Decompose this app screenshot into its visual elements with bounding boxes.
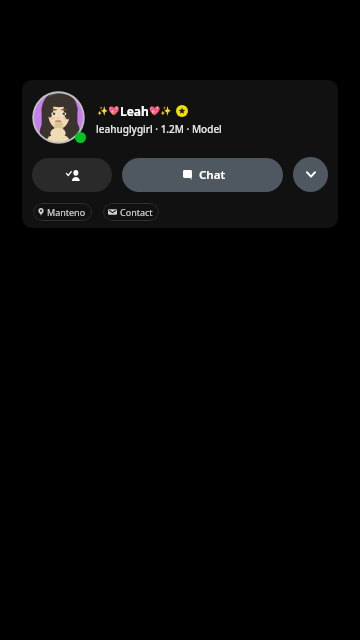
button[interactable]: Friend added bbox=[32, 158, 112, 192]
staticText: Leah bbox=[120, 103, 149, 119]
staticText: Contact bbox=[120, 206, 153, 218]
button[interactable]: Contact bbox=[103, 203, 159, 221]
staticText: ✨💖 bbox=[97, 106, 120, 117]
staticText: Manteno bbox=[47, 206, 86, 218]
button[interactable]: More options bbox=[293, 157, 328, 192]
staticText: leahuglygirl · 1.2M · Model bbox=[96, 122, 222, 136]
button[interactable]: Chat bbox=[122, 158, 283, 192]
button[interactable]: Manteno bbox=[33, 203, 92, 221]
staticText: 💖✨ bbox=[149, 106, 172, 117]
staticText: Chat bbox=[199, 167, 226, 183]
